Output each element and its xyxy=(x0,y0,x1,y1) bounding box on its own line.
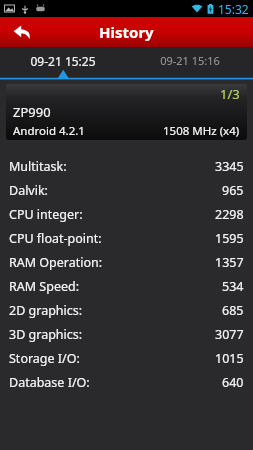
staticText: RAM Operation: xyxy=(9,254,103,271)
staticText: CPU float-point: xyxy=(9,230,102,247)
staticText: 1/3 xyxy=(220,85,240,103)
staticText: 1595 xyxy=(215,230,244,247)
staticText: 3077 xyxy=(215,326,244,343)
staticText: 09-21 15:16 xyxy=(160,53,220,68)
staticText: 3345 xyxy=(215,158,244,175)
button[interactable]: 09-21 15:25 xyxy=(0,47,126,74)
staticText: 685 xyxy=(222,302,244,319)
button[interactable]: 2D graphics: xyxy=(0,298,253,322)
button[interactable]: Multitask: xyxy=(0,154,253,178)
staticText: 2298 xyxy=(215,206,244,223)
staticText: Multitask: xyxy=(9,158,67,175)
staticText: 1015 xyxy=(215,350,244,367)
staticText: History xyxy=(99,22,154,42)
staticText: RAM Speed: xyxy=(9,278,80,295)
button[interactable]: Back xyxy=(0,17,44,47)
button[interactable]: Storage I/O: xyxy=(0,346,253,370)
button[interactable]: 1/3 xyxy=(6,84,247,140)
button[interactable]: 09-21 15:16 xyxy=(126,47,253,74)
staticText: 1508 MHz (x4) xyxy=(163,123,240,139)
staticText: 09-21 15:25 xyxy=(30,53,96,69)
staticText: Dalvik: xyxy=(9,182,48,199)
button[interactable]: 3D graphics: xyxy=(0,322,253,346)
button[interactable]: Database I/O: xyxy=(0,370,253,394)
button[interactable]: CPU float-point: xyxy=(0,226,253,250)
staticText: 1357 xyxy=(215,254,244,271)
staticText: CPU integer: xyxy=(9,206,83,223)
staticText: 965 xyxy=(222,182,244,199)
staticText: 3D graphics: xyxy=(9,326,83,343)
staticText: Android 4.2.1 xyxy=(13,123,85,139)
button[interactable]: CPU integer: xyxy=(0,202,253,226)
button[interactable]: RAM Operation: xyxy=(0,250,253,274)
button[interactable]: RAM Speed: xyxy=(0,274,253,298)
staticText: 15:32 xyxy=(218,1,249,17)
button[interactable]: Dalvik: xyxy=(0,178,253,202)
staticText: 534 xyxy=(222,278,244,295)
staticText: ZP990 xyxy=(13,103,51,121)
staticText: 2D graphics: xyxy=(9,302,83,319)
staticText: 640 xyxy=(222,374,244,391)
staticText: Storage I/O: xyxy=(9,350,80,367)
staticText: Database I/O: xyxy=(9,374,90,391)
